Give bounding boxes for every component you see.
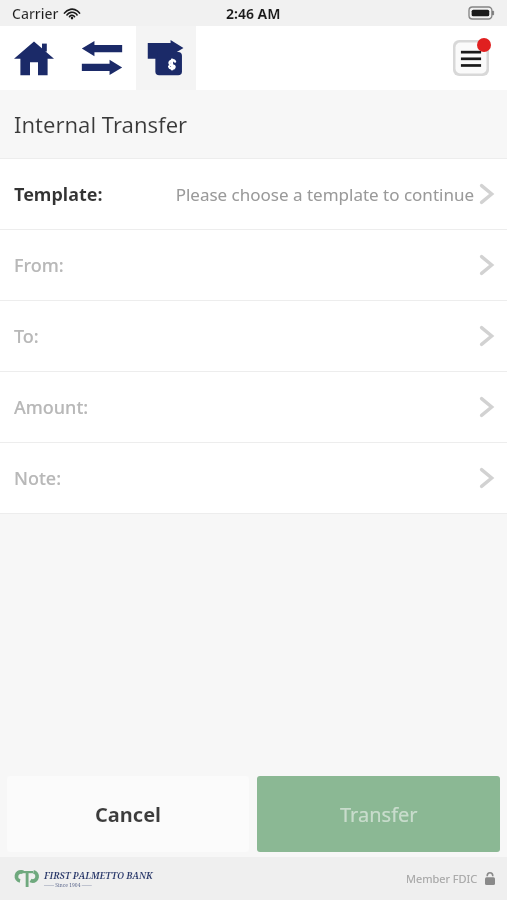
staticText: Template: [14, 182, 103, 207]
staticText: From: [14, 253, 64, 278]
staticText: Carrier [12, 4, 59, 23]
staticText: —— Since 1904 —— [44, 882, 92, 889]
button[interactable]: Cancel [7, 776, 249, 852]
staticText: FIRST PALMETTO BANK [44, 869, 153, 881]
button[interactable]: Menu [449, 36, 493, 80]
button[interactable]: Home [0, 26, 68, 90]
button[interactable]: Template: [0, 159, 507, 229]
button[interactable]: Internal Transfer [136, 26, 196, 90]
staticText: Transfer [340, 801, 418, 828]
staticText: 2:46 AM [226, 4, 281, 23]
staticText: Note: [14, 466, 62, 491]
button[interactable]: From: [0, 230, 507, 300]
button[interactable]: Transfers [68, 26, 136, 90]
staticText: Member FDIC [406, 871, 478, 886]
button[interactable]: Transfer [257, 776, 500, 852]
staticText: To: [14, 324, 39, 349]
button[interactable]: Note: [0, 443, 507, 513]
staticText: Amount: [14, 395, 89, 420]
staticText: Internal Transfer [14, 109, 188, 139]
staticText: Cancel [95, 801, 162, 828]
button[interactable]: Amount: [0, 372, 507, 442]
button[interactable]: To: [0, 301, 507, 371]
staticText: Please choose a template to continue [175, 183, 474, 206]
